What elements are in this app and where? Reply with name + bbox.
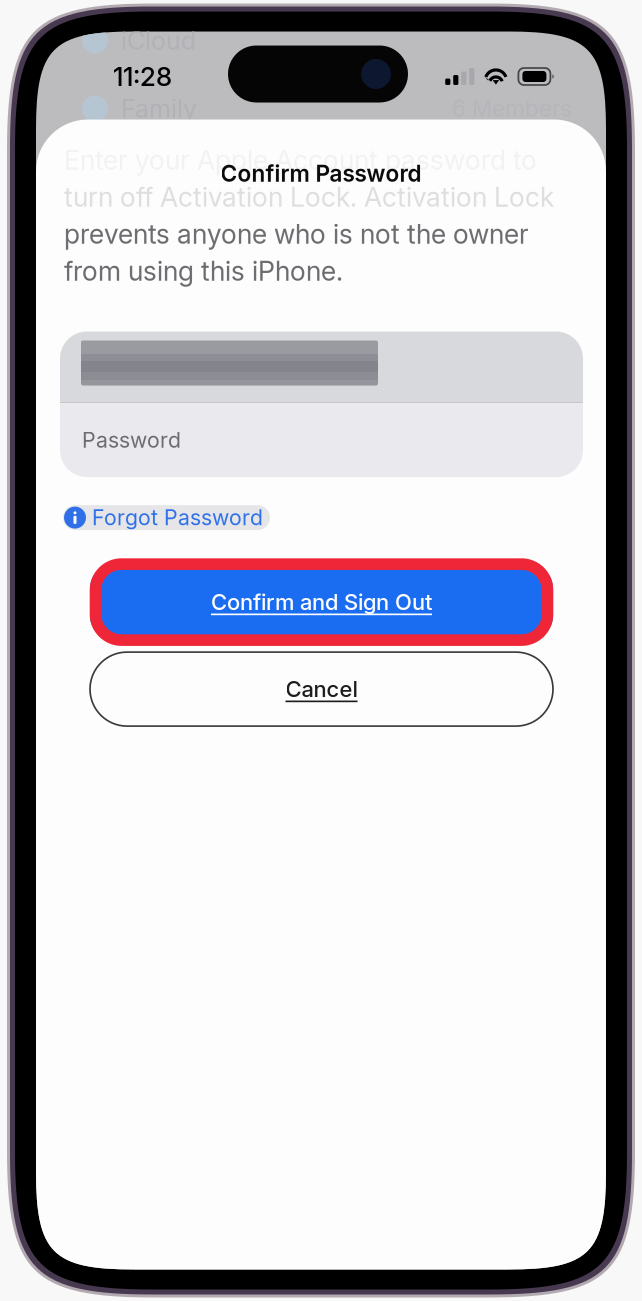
button[interactable]: Cancel <box>90 652 553 726</box>
staticText: Forgot Password <box>92 505 263 530</box>
staticText: turn off Activation Lock. Activation Loc… <box>64 181 554 213</box>
button[interactable]: Forgot Password <box>63 505 270 530</box>
staticText: Confirm Password <box>220 160 421 187</box>
staticText: prevents anyone who is not the owner <box>64 218 529 250</box>
staticText: 11:28 <box>113 61 172 92</box>
staticText: Family <box>121 93 197 124</box>
staticText: iCloud <box>121 25 196 56</box>
staticText: Confirm and Sign Out <box>211 589 432 615</box>
staticText: Enter your Apple Account password to <box>64 144 537 176</box>
staticText: Password <box>82 427 181 453</box>
staticText: Cancel <box>285 676 357 702</box>
staticText: 6 Members <box>452 95 572 122</box>
button[interactable]: Confirm and Sign Out <box>90 564 553 640</box>
staticText: from using this iPhone. <box>64 255 343 287</box>
